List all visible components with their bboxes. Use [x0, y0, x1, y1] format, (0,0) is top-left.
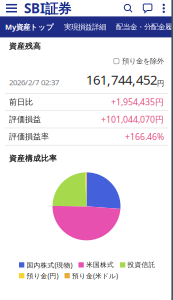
staticText: 評価損益率 [9, 132, 49, 142]
staticText: 実現損益詳細 [64, 22, 106, 32]
staticText: 2026/2/7 02:37 [9, 77, 59, 87]
button[interactable]: 実現損益詳細 [59, 16, 111, 37]
staticText: 預り金を除外 [122, 57, 164, 66]
button[interactable]: Menu [3, 0, 20, 16]
staticText: 預り金(米ドル) [72, 271, 118, 280]
staticText: 配当金・分配金履歴 [116, 22, 173, 32]
button[interactable]: Messages [138, 0, 157, 16]
staticText: SBI証券 [24, 0, 71, 17]
staticText: 米国株式 [86, 261, 114, 269]
staticText: 前日比 [9, 97, 33, 107]
staticText: My資産トップ [5, 22, 54, 32]
button[interactable]: Search [118, 0, 138, 16]
staticText: 円 [157, 79, 164, 88]
staticText: 161,744,452 [86, 71, 157, 88]
button[interactable]: 預り金を除外 [114, 57, 164, 66]
staticText: 預り金(円) [26, 271, 58, 280]
staticText: 資産構成比率 [9, 154, 57, 163]
staticText: 国内株式(現物) [26, 260, 72, 269]
button[interactable]: SBI証券 [20, 0, 71, 16]
staticText: +101,044,070円 [101, 113, 164, 125]
button[interactable]: More options [157, 0, 170, 16]
staticText: +1,954,435円 [111, 96, 164, 108]
staticText: 投資信託 [127, 261, 155, 269]
staticText: 評価損益 [9, 114, 41, 124]
button[interactable]: 配当金・分配金履歴 [111, 16, 173, 37]
staticText: 資産残高 [9, 41, 41, 51]
button[interactable]: My資産トップ [0, 16, 59, 37]
staticText: +166.46% [125, 131, 164, 142]
